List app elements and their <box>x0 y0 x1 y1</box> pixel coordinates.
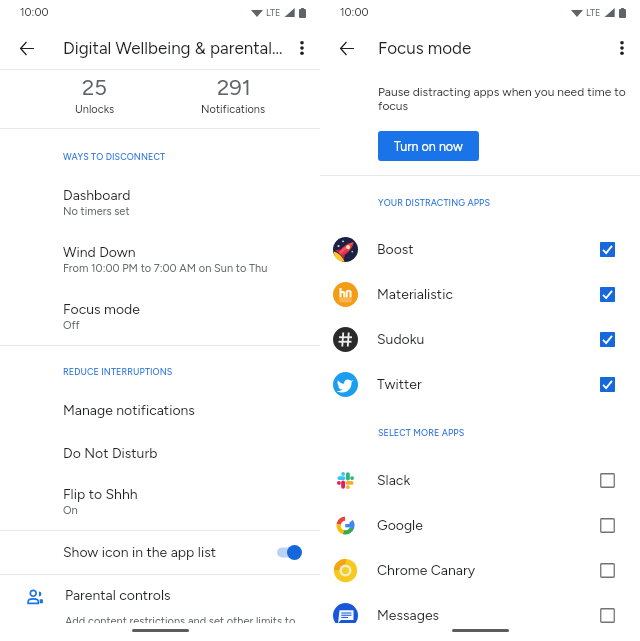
button[interactable]: Show icon in the app list <box>0 531 320 574</box>
staticText: Messages <box>377 607 600 624</box>
staticText: Notifications <box>201 103 266 116</box>
staticText: YOUR DISTRACTING APPS <box>378 197 491 208</box>
staticText: Pause distracting apps when you need tim… <box>378 85 632 113</box>
staticText: 25 <box>82 74 107 100</box>
staticText: 10:00 <box>20 6 49 19</box>
staticText: Google <box>377 517 600 534</box>
staticText: Slack <box>377 472 600 489</box>
button[interactable]: Slack <box>320 458 640 503</box>
staticText: Turn on now <box>394 139 463 154</box>
staticText: From 10:00 PM to 7:00 AM on Sun to Thu <box>63 262 268 275</box>
button[interactable]: Parental controls <box>0 575 320 628</box>
staticText: Unlocks <box>75 103 115 116</box>
button[interactable]: Navigate up <box>13 34 41 62</box>
button[interactable]: Messages <box>320 593 640 638</box>
staticText: REDUCE INTERRUPTIONS <box>63 366 173 377</box>
button[interactable]: Twitter <box>320 362 640 407</box>
staticText: LTE <box>586 7 601 18</box>
staticText: Sudoku <box>377 331 600 348</box>
staticText: Off <box>63 319 80 332</box>
staticText: Chrome Canary <box>377 562 600 579</box>
staticText: Digital Wellbeing & parental... <box>63 38 283 58</box>
staticText: 291 <box>217 74 251 100</box>
button[interactable]: Do Not Disturb <box>0 445 320 462</box>
staticText: Boost <box>377 241 600 258</box>
staticText: Show icon in the app list <box>63 544 277 561</box>
staticText: Materialistic <box>377 286 600 303</box>
staticText: Do Not Disturb <box>63 445 158 462</box>
staticText: Parental controls <box>65 587 171 604</box>
staticText: Manage notifications <box>63 402 195 419</box>
button[interactable]: Dashboard <box>0 187 320 218</box>
button[interactable]: Flip to Shhh <box>0 486 320 517</box>
staticText: Wind Down <box>63 244 136 261</box>
staticText: Twitter <box>377 376 600 393</box>
staticText: SELECT MORE APPS <box>378 427 465 438</box>
button[interactable]: Manage notifications <box>0 402 320 419</box>
button[interactable]: More options <box>608 34 636 62</box>
button[interactable]: Boost <box>320 227 640 272</box>
staticText: Focus mode <box>378 38 472 58</box>
staticText: LTE <box>266 7 281 18</box>
staticText: Flip to Shhh <box>63 486 138 503</box>
button[interactable]: Turn on now <box>378 131 479 161</box>
button[interactable]: Chrome Canary <box>320 548 640 593</box>
button[interactable]: Sudoku <box>320 317 640 362</box>
staticText: WAYS TO DISCONNECT <box>63 151 166 162</box>
staticText: On <box>63 504 78 517</box>
button[interactable]: Focus mode <box>0 301 320 332</box>
button[interactable]: Materialistic <box>320 272 640 317</box>
staticText: No timers set <box>63 205 130 218</box>
button[interactable]: Google <box>320 503 640 548</box>
button[interactable]: Wind Down <box>0 244 320 275</box>
staticText: Focus mode <box>63 301 140 318</box>
staticText: 10:00 <box>340 6 369 19</box>
button[interactable]: Navigate up <box>333 34 361 62</box>
staticText: Dashboard <box>63 187 131 204</box>
staticText: Add content restrictions and set other l… <box>65 615 296 628</box>
button[interactable]: More options <box>288 34 316 62</box>
